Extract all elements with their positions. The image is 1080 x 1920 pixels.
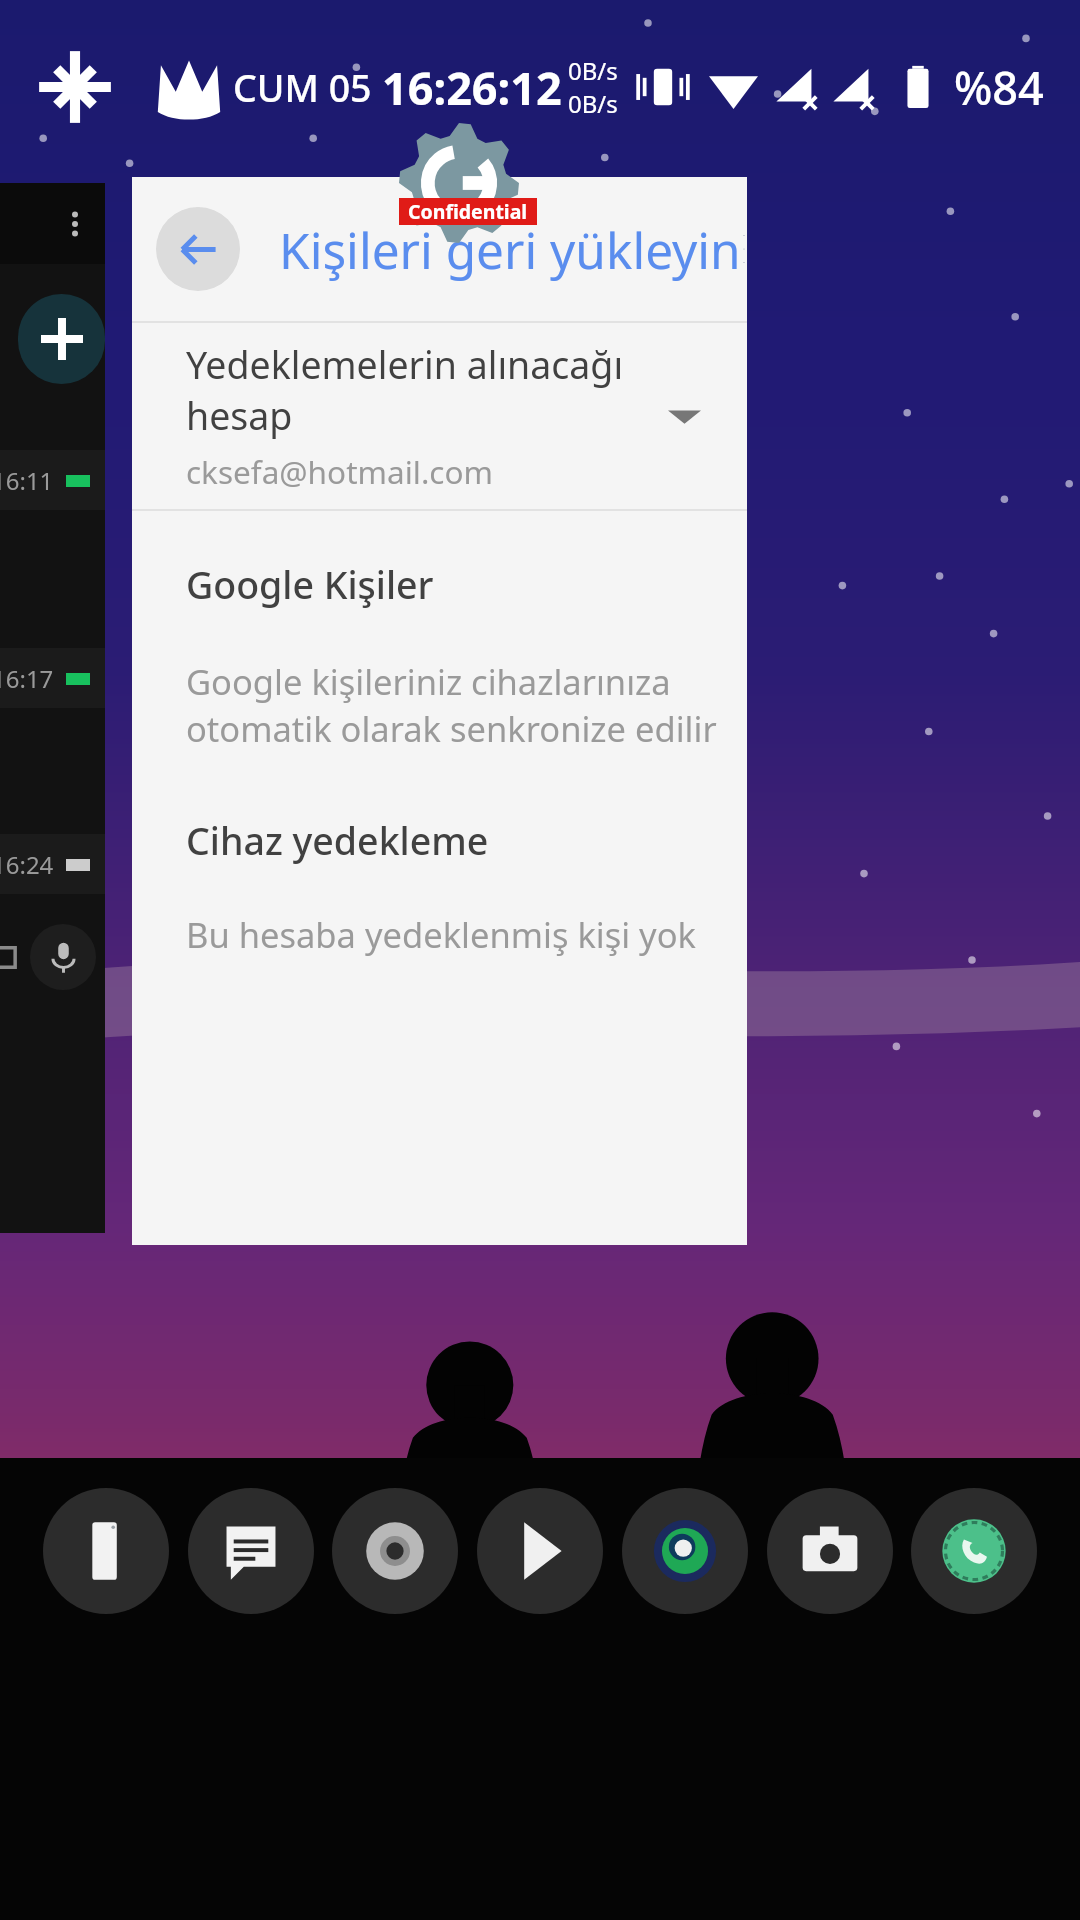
button[interactable]: Phone <box>43 1488 169 1614</box>
staticText: 16:17 <box>0 662 54 695</box>
staticText: Kişileri geri yükleyin <box>279 216 741 283</box>
button[interactable]: Camera <box>767 1488 893 1614</box>
staticText: Google kişileriniz cihazlarınıza otomati… <box>186 658 717 752</box>
staticText: %84 <box>954 57 1044 118</box>
button[interactable]: WhatsApp <box>622 1488 748 1614</box>
button[interactable]: Back <box>156 207 240 291</box>
staticText: CUM 05 <box>233 62 382 113</box>
staticText: 0B/s <box>568 54 618 87</box>
staticText: Bu hesaba yedeklenmiş kişi yok <box>186 911 697 958</box>
button[interactable]: More options <box>741 204 747 294</box>
staticText: 16:11 <box>0 464 54 497</box>
button[interactable]: Dialer <box>911 1488 1037 1614</box>
button[interactable]: Yedeklemelerin alınacağı hesap <box>132 323 747 509</box>
staticText: Yedeklemelerin alınacağı hesap <box>186 339 645 441</box>
staticText: cksefa@hotmail.com <box>186 450 493 493</box>
staticText: Google Kişiler <box>186 559 434 610</box>
staticText: Cihaz yedekleme <box>186 815 489 866</box>
other: Change account <box>645 377 723 455</box>
staticText: 16:26:12 <box>382 57 562 118</box>
button[interactable]: Browser <box>332 1488 458 1614</box>
staticText: 0B/s <box>568 87 618 120</box>
button[interactable]: Play Store <box>477 1488 603 1614</box>
button[interactable]: Messages <box>188 1488 314 1614</box>
button[interactable]: New <box>18 294 105 384</box>
staticText: Confidential <box>408 198 528 225</box>
button[interactable]: New <box>0 183 105 1233</box>
staticText: 16:24 <box>0 848 54 881</box>
